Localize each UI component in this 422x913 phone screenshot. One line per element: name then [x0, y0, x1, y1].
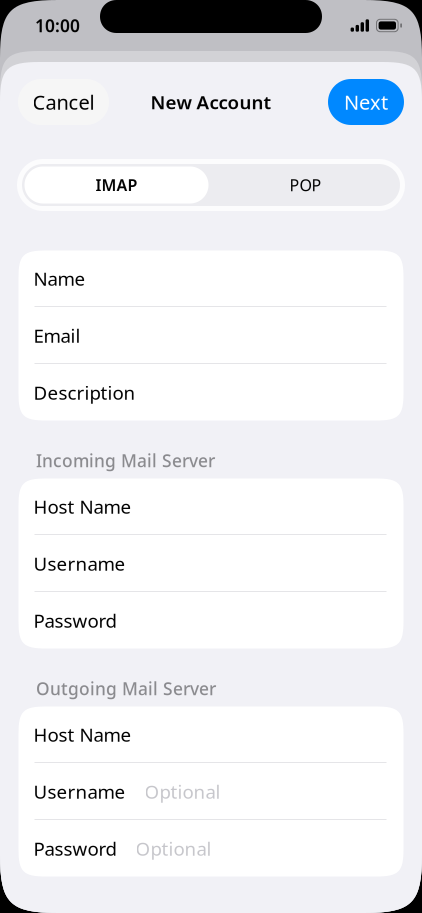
- staticText: IMAP: [95, 174, 137, 196]
- staticText: 10:00: [35, 14, 80, 37]
- staticText: Username: [33, 551, 125, 576]
- staticText: Password: [33, 608, 116, 633]
- staticText: New Account: [150, 90, 271, 114]
- button[interactable]: Next: [328, 79, 404, 125]
- staticText: Next: [344, 89, 388, 115]
- staticText: Optional: [135, 836, 211, 861]
- staticText: Password: [33, 836, 116, 861]
- staticText: Incoming Mail Server: [36, 449, 215, 472]
- staticText: Optional: [144, 779, 220, 804]
- button[interactable]: Cancel: [18, 79, 109, 125]
- staticText: Description: [33, 380, 135, 405]
- staticText: Host Name: [33, 494, 131, 519]
- button[interactable]: POP: [211, 164, 400, 206]
- staticText: Outgoing Mail Server: [36, 677, 216, 700]
- staticText: Username: [33, 779, 125, 804]
- staticText: Email: [33, 323, 80, 348]
- staticText: Host Name: [33, 722, 131, 747]
- staticText: POP: [289, 174, 321, 196]
- button[interactable]: IMAP: [22, 164, 211, 206]
- staticText: Name: [33, 266, 85, 291]
- staticText: Cancel: [32, 89, 94, 115]
